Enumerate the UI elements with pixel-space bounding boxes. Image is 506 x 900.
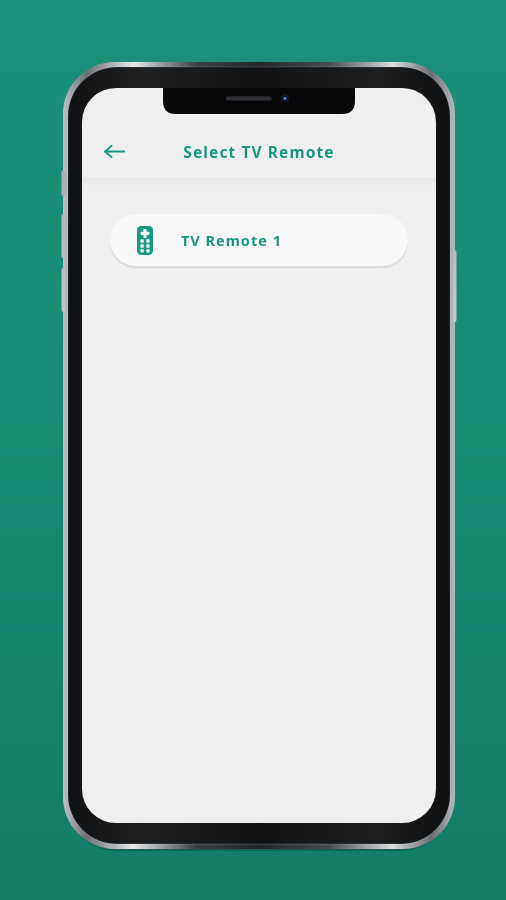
- staticText: TV Remote 1: [181, 230, 282, 250]
- button[interactable]: Back: [96, 133, 132, 169]
- staticText: Select TV Remote: [183, 141, 335, 162]
- button[interactable]: TV Remote 1: [110, 214, 408, 266]
